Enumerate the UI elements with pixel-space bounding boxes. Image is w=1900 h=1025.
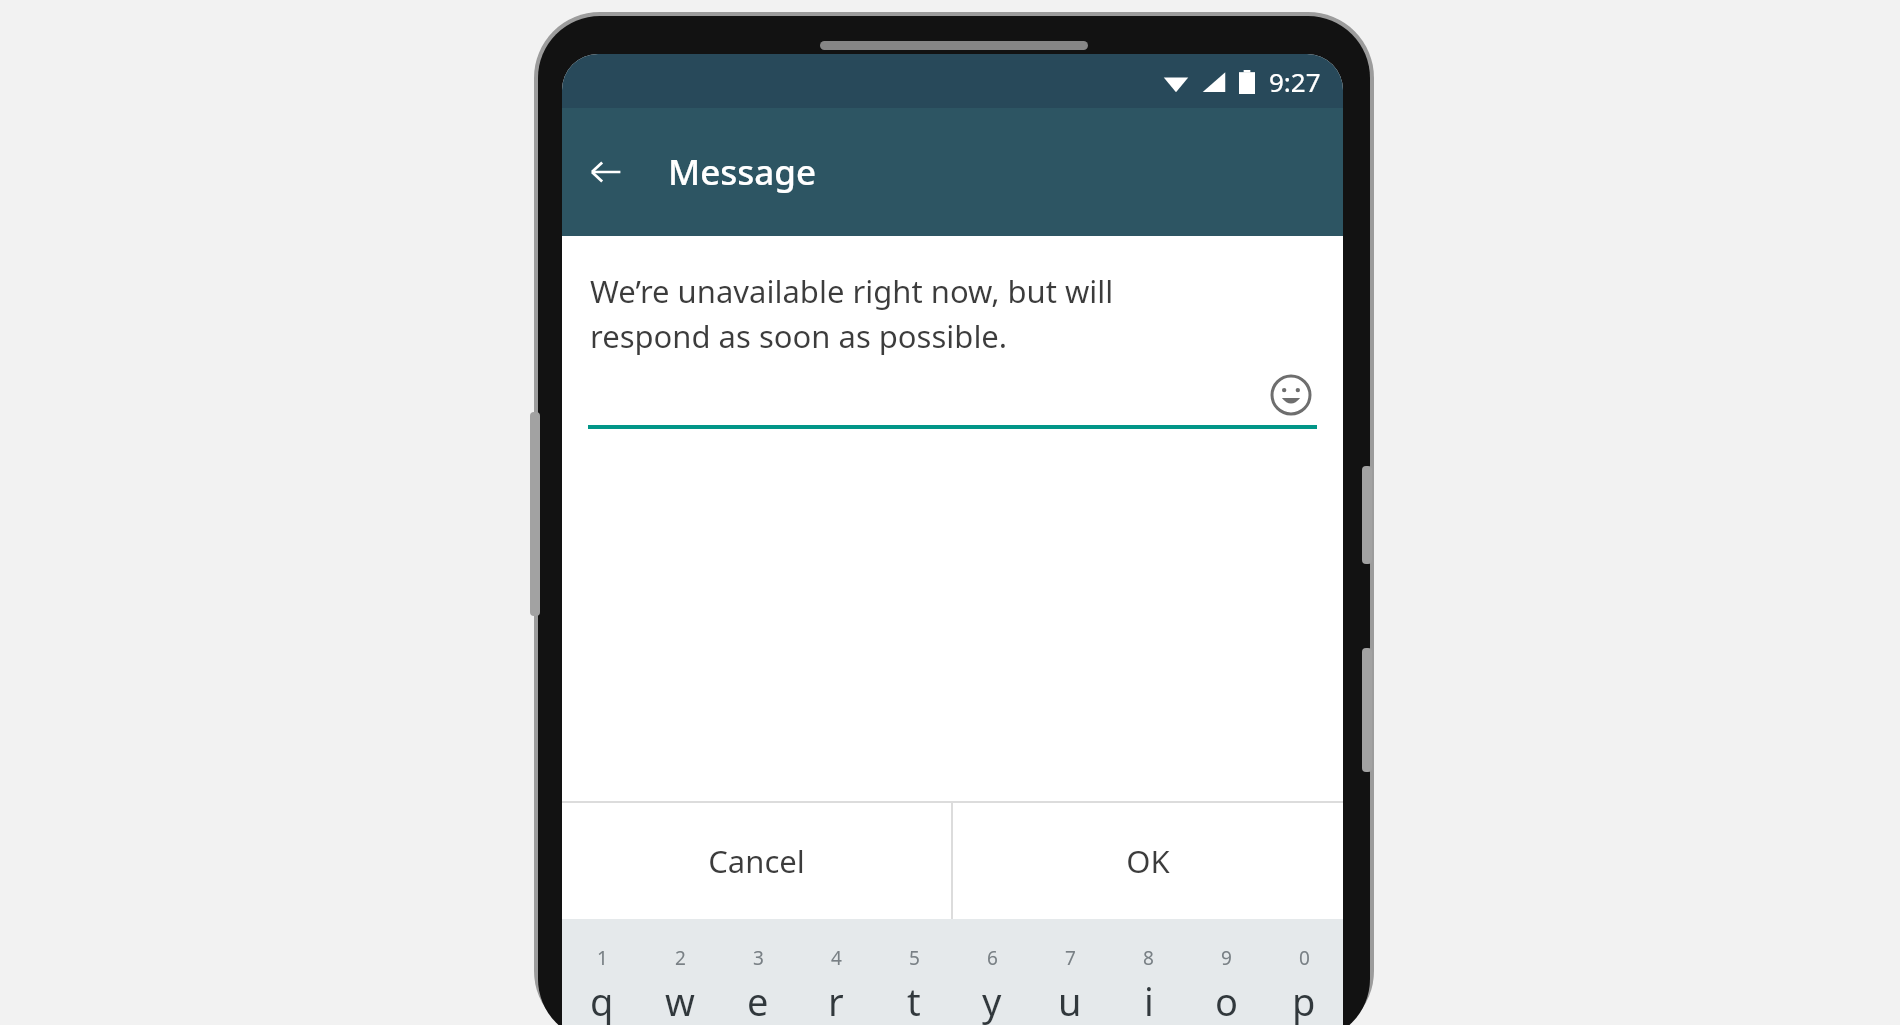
button[interactable]: 0 bbox=[1265, 945, 1343, 1025]
staticText: 9 bbox=[1221, 945, 1232, 971]
staticText: Message bbox=[668, 148, 817, 196]
staticText: 9:27 bbox=[1269, 64, 1321, 99]
staticText: Cancel bbox=[708, 840, 805, 882]
staticText: o bbox=[1215, 975, 1238, 1025]
button[interactable]: OK bbox=[953, 803, 1343, 919]
button[interactable]: 9 bbox=[1187, 945, 1265, 1025]
staticText: i bbox=[1144, 975, 1154, 1025]
button[interactable]: 7 bbox=[1031, 945, 1109, 1025]
staticText: 3 bbox=[753, 945, 764, 971]
button[interactable]: Cancel bbox=[562, 803, 951, 919]
button[interactable]: 6 bbox=[953, 945, 1031, 1025]
button[interactable]: 4 bbox=[797, 945, 875, 1025]
staticText: 6 bbox=[987, 945, 998, 971]
staticText: 4 bbox=[831, 945, 842, 971]
staticText: 2 bbox=[675, 945, 686, 971]
staticText: OK bbox=[1126, 840, 1170, 882]
staticText: t bbox=[907, 975, 921, 1025]
staticText: 1 bbox=[597, 945, 608, 971]
staticText: 5 bbox=[909, 945, 920, 971]
button[interactable]: 8 bbox=[1109, 945, 1187, 1025]
staticText: 8 bbox=[1143, 945, 1154, 971]
staticText: q bbox=[590, 975, 614, 1025]
staticText: 7 bbox=[1065, 945, 1076, 971]
staticText: 0 bbox=[1299, 945, 1310, 971]
button[interactable]: Insert emoji bbox=[1265, 369, 1317, 421]
staticText: We’re unavailable right now, but will re… bbox=[590, 270, 1114, 357]
staticText: p bbox=[1292, 975, 1316, 1025]
button[interactable]: 3 bbox=[719, 945, 797, 1025]
button[interactable]: 1 bbox=[562, 945, 641, 1025]
staticText: w bbox=[665, 975, 695, 1025]
button[interactable]: 2 bbox=[641, 945, 719, 1025]
button[interactable]: Back bbox=[574, 140, 638, 204]
staticText: u bbox=[1058, 975, 1082, 1025]
staticText: y bbox=[982, 975, 1002, 1025]
staticText: e bbox=[747, 975, 769, 1025]
button[interactable]: 5 bbox=[875, 945, 953, 1025]
staticText: r bbox=[828, 975, 844, 1025]
